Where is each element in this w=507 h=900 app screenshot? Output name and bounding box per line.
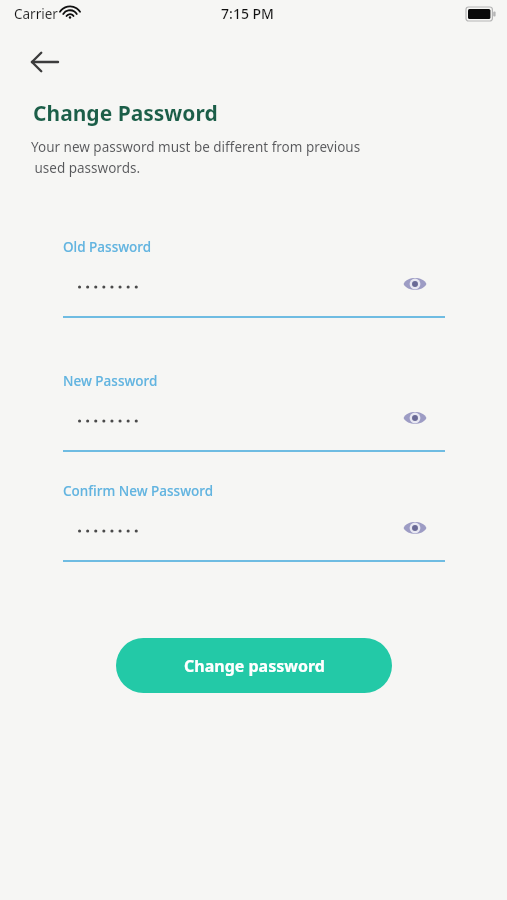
button[interactable]: Back: [22, 44, 68, 80]
button[interactable]: Show password: [396, 402, 434, 434]
staticText: Change Password: [33, 99, 218, 128]
staticText: Confirm New Password: [63, 482, 214, 500]
button[interactable]: Change password: [116, 638, 392, 693]
staticText: Change password: [184, 655, 325, 677]
staticText: Carrier: [14, 5, 58, 23]
staticText: 7:15 PM: [221, 4, 274, 23]
staticText: New Password: [63, 372, 158, 390]
button[interactable]: Show password: [396, 512, 434, 544]
staticText: Old Password: [63, 238, 152, 256]
button[interactable]: Show password: [396, 268, 434, 300]
staticText: Your new password must be different from…: [31, 138, 361, 177]
